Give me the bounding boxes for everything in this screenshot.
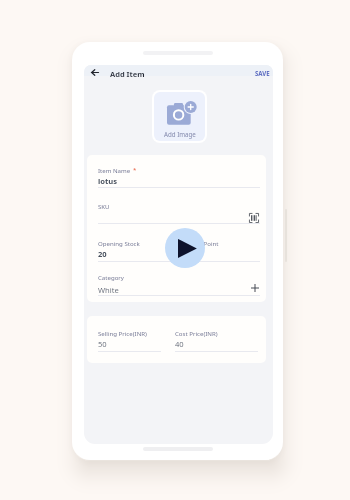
staticText: Selling Price(INR) [98,329,147,337]
staticText: * [133,166,137,174]
staticText: White [98,285,119,295]
staticText: Add Item [110,69,145,79]
staticText: Cost Price(INR) [175,329,218,337]
staticText: 20 [98,249,107,259]
staticText: Category [98,273,124,281]
staticText: Reorder Point [179,239,219,247]
button[interactable]: Add category [249,282,260,293]
staticText: SKU [98,202,110,210]
button[interactable]: Play video [165,228,205,268]
staticText: SAVE [255,69,270,77]
button[interactable]: Scan barcode [248,212,259,223]
staticText: 50 [98,339,107,349]
button[interactable]: Back [91,69,99,76]
staticText: lotus [98,176,118,186]
staticText: Add Image [164,130,196,138]
button[interactable]: SAVE [252,67,273,78]
button[interactable]: Add Image [154,92,205,141]
staticText: Item Name [98,166,131,174]
staticText: 5 [179,249,184,259]
button[interactable]: Add Item [110,69,145,79]
staticText: 40 [175,339,184,349]
staticText: Opening Stock [98,239,140,247]
